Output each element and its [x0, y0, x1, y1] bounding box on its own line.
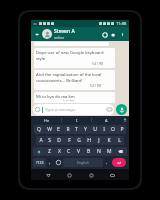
staticText: C	[67, 148, 71, 155]
staticText: E	[57, 126, 60, 133]
button[interactable]: J	[94, 136, 104, 145]
staticText: Z	[48, 148, 51, 155]
button[interactable]: Dope use of new Google keyboard	[34, 48, 115, 68]
staticText: 5:41 PM	[90, 84, 102, 88]
staticText: style	[36, 56, 46, 62]
staticText: 5:41 PM	[92, 62, 104, 66]
button[interactable]: G	[74, 136, 84, 145]
staticText: N	[97, 148, 101, 155]
button[interactable]: ,	[46, 157, 54, 168]
button[interactable]: A	[92, 116, 121, 124]
staticText: H	[87, 137, 91, 144]
staticText: Mi tu kya do ma km	[36, 94, 75, 100]
staticText: A	[39, 137, 43, 144]
button[interactable]: Back	[33, 30, 42, 39]
button[interactable]: ?123	[33, 158, 46, 167]
staticText: Y	[84, 126, 87, 133]
button[interactable]: Type a message	[33, 104, 114, 115]
staticText: R	[66, 126, 70, 133]
staticText: G	[77, 137, 81, 144]
button[interactable]: L	[114, 136, 124, 145]
button[interactable]: More options	[118, 30, 127, 39]
staticText: A	[105, 118, 108, 123]
button[interactable]: C	[64, 147, 74, 156]
staticText: Steven A	[54, 28, 75, 35]
staticText: online	[54, 35, 65, 40]
button[interactable]: Voice input	[121, 116, 128, 124]
staticText: S	[48, 137, 51, 144]
staticText: .	[106, 159, 108, 166]
button[interactable]: W	[44, 125, 54, 134]
button[interactable]: Backspace	[114, 147, 127, 156]
staticText: ?123	[36, 160, 44, 165]
button[interactable]: Mi tu kya do ma km	[34, 92, 115, 103]
staticText: V	[77, 148, 81, 155]
staticText: D	[57, 137, 61, 144]
button[interactable]	[42, 29, 52, 39]
staticText: L	[118, 137, 121, 144]
button[interactable]: I	[62, 116, 91, 124]
button[interactable]: Screenshot	[107, 170, 117, 180]
staticText: And the capitalisation of the local	[36, 72, 102, 78]
button[interactable]: Emoji	[54, 157, 63, 168]
staticText: M	[107, 148, 112, 155]
button[interactable]: Z	[45, 147, 54, 156]
button[interactable]: X	[54, 147, 64, 156]
button[interactable]: Home	[64, 170, 74, 180]
staticText: Type a message	[45, 107, 76, 112]
button[interactable]: Q	[34, 125, 44, 134]
button[interactable]: Back	[43, 170, 53, 180]
staticText: X	[58, 148, 61, 155]
button[interactable]: And the capitalisation of the local	[34, 70, 115, 90]
staticText: English	[77, 160, 89, 165]
button[interactable]: Space	[63, 158, 103, 167]
button[interactable]: D	[54, 136, 64, 145]
button[interactable]: T	[72, 125, 81, 134]
button[interactable]: B	[84, 147, 94, 156]
staticText: I	[76, 118, 78, 123]
button[interactable]: M	[104, 147, 114, 156]
button[interactable]: Send	[112, 158, 126, 167]
button[interactable]: He	[32, 116, 61, 124]
button[interactable]: H	[84, 136, 94, 145]
staticText: J	[98, 137, 100, 144]
button[interactable]: Recents	[86, 170, 96, 180]
button[interactable]: R	[63, 125, 72, 134]
button[interactable]: Shift	[33, 147, 45, 156]
button[interactable]: Voice message	[116, 104, 127, 115]
staticText: B	[87, 148, 91, 155]
staticText: He	[44, 118, 50, 123]
button[interactable]: .	[103, 157, 111, 168]
staticText: O	[111, 126, 115, 133]
button[interactable]: Call	[100, 30, 109, 39]
staticText: 11:08	[116, 21, 127, 26]
button[interactable]: S	[45, 136, 54, 145]
button[interactable]: U	[90, 125, 99, 134]
staticText: W	[47, 126, 52, 133]
staticText: T	[75, 126, 78, 133]
button[interactable]: V	[74, 147, 84, 156]
button[interactable]: O	[108, 125, 117, 134]
button[interactable]: F	[64, 136, 74, 145]
staticText: I	[103, 126, 105, 133]
button[interactable]: Y	[81, 125, 90, 134]
staticText: U	[93, 126, 97, 133]
button[interactable]: P	[117, 125, 126, 134]
staticText: ,	[49, 159, 51, 166]
button[interactable]: I	[99, 125, 108, 134]
staticText: K	[107, 137, 111, 144]
button[interactable]: K	[104, 136, 114, 145]
button[interactable]: N	[94, 147, 104, 156]
staticText: Dope use of new Google keyboard	[36, 50, 104, 56]
button[interactable]: E	[54, 125, 63, 134]
staticText: Q	[37, 126, 41, 133]
button[interactable]: A	[36, 136, 45, 145]
button[interactable]: Video call	[109, 30, 118, 39]
staticText: 5:41 PM	[63, 100, 75, 101]
staticText: F	[68, 137, 71, 144]
staticText: cooooooents... Brilliant!	[36, 78, 83, 84]
button[interactable]: Steven A	[54, 28, 100, 40]
staticText: P	[120, 126, 124, 133]
